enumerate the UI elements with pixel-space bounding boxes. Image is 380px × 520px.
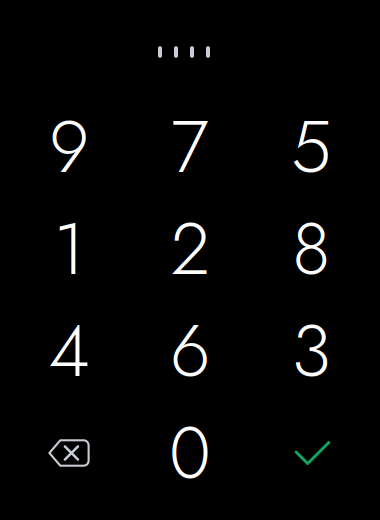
staticText: 9 [49, 95, 89, 199]
staticText: 0 [169, 401, 211, 505]
staticText: 8 [292, 197, 330, 301]
button[interactable]: Confirm [250, 402, 371, 504]
staticText: 6 [170, 299, 210, 403]
button[interactable]: 6 [129, 300, 250, 402]
button[interactable]: 8 [250, 198, 371, 300]
staticText: 5 [291, 95, 331, 199]
button[interactable]: 0 [129, 402, 250, 504]
button[interactable]: 7 [129, 96, 250, 198]
staticText: 2 [170, 197, 209, 301]
staticText: 4 [48, 299, 89, 403]
button[interactable]: Delete [8, 402, 129, 504]
button[interactable]: 9 [8, 96, 129, 198]
button[interactable]: 3 [250, 300, 371, 402]
staticText: 3 [291, 299, 330, 403]
button[interactable]: 4 [8, 300, 129, 402]
button[interactable]: 1 [8, 198, 129, 300]
button[interactable]: 2 [129, 198, 250, 300]
staticText: 7 [171, 95, 209, 199]
button[interactable]: 5 [250, 96, 371, 198]
staticText: 1 [53, 197, 84, 301]
